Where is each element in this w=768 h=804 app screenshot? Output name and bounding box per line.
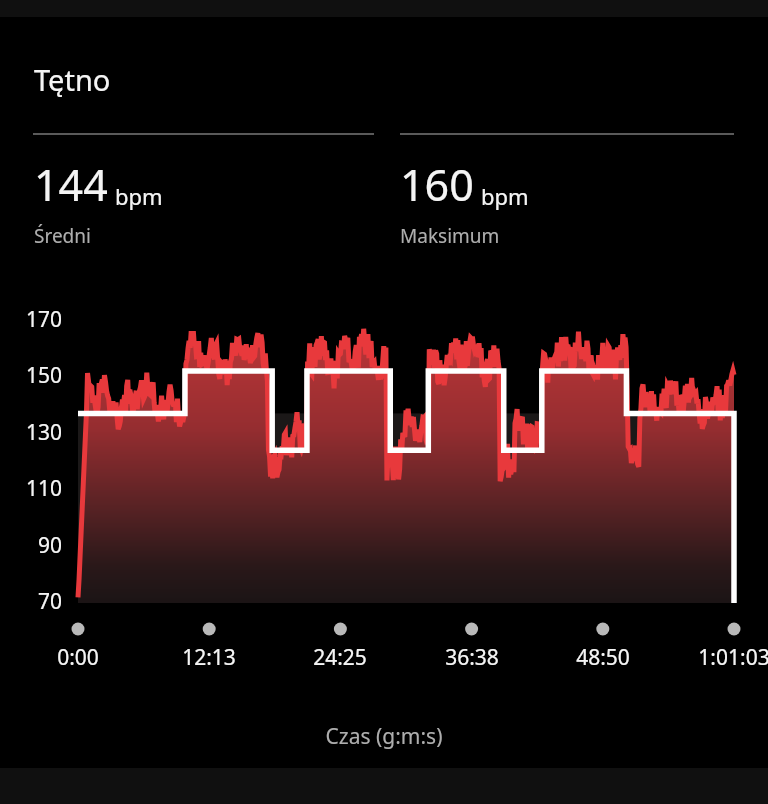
staticText: 110 [0,474,62,503]
staticText: 1:01:03 [674,643,768,672]
staticText: 24:25 [280,643,400,672]
staticText: 130 [0,418,62,447]
button[interactable]: 144 [34,155,163,249]
staticText: 90 [0,531,62,560]
staticText: bpm [115,181,163,211]
staticText: 0:00 [18,643,138,672]
staticText: bpm [481,181,529,211]
staticText: 144 [34,155,108,214]
staticText: Maksimum [400,223,500,249]
staticText: 150 [0,361,62,390]
staticText: Średni [34,223,91,249]
staticText: 12:13 [149,643,269,672]
staticText: 48:50 [543,643,663,672]
button[interactable]: 160 [400,155,529,249]
staticText: Czas (g:m:s) [0,722,768,751]
button[interactable]: Tętno [34,60,111,99]
staticText: 36:38 [412,643,532,672]
staticText: 160 [400,155,474,214]
staticText: 170 [0,305,62,334]
staticText: 70 [0,587,62,616]
